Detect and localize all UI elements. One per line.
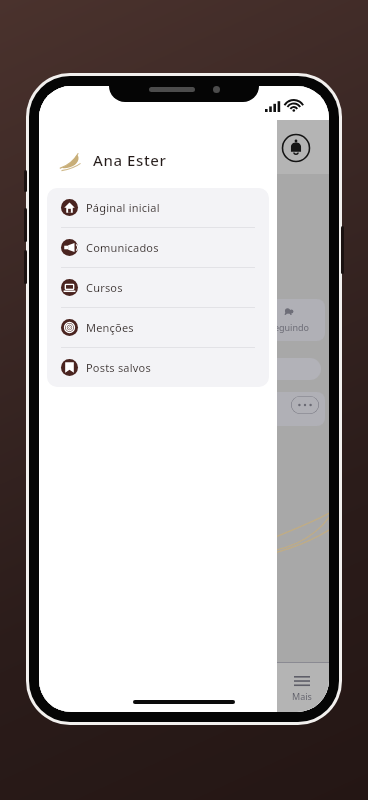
staticText: Ana Ester	[93, 150, 167, 170]
button[interactable]: More options	[291, 396, 319, 414]
staticText: Posts salvos	[86, 360, 151, 375]
button[interactable]: Cursos	[47, 268, 269, 307]
button[interactable]: Ana Ester	[57, 144, 277, 176]
button[interactable]: Comunicados	[47, 228, 269, 267]
button[interactable]: Seguindo	[253, 299, 325, 341]
staticText: Seguindo	[269, 321, 309, 333]
button[interactable]: Save	[261, 398, 281, 418]
button[interactable]: entos	[239, 358, 321, 380]
staticText: Comunicados	[86, 240, 159, 255]
button[interactable]: Páginal inicial	[47, 188, 269, 227]
staticText: Mais	[292, 690, 312, 702]
button[interactable]: Posts salvos	[47, 348, 269, 387]
staticText: Páginal inicial	[86, 200, 160, 215]
button[interactable]: Mais	[275, 668, 329, 710]
button[interactable]: Notifications	[281, 133, 311, 163]
button[interactable]: Menções	[47, 308, 269, 347]
staticText: Cursos	[86, 280, 123, 295]
staticText: Menções	[86, 320, 134, 335]
